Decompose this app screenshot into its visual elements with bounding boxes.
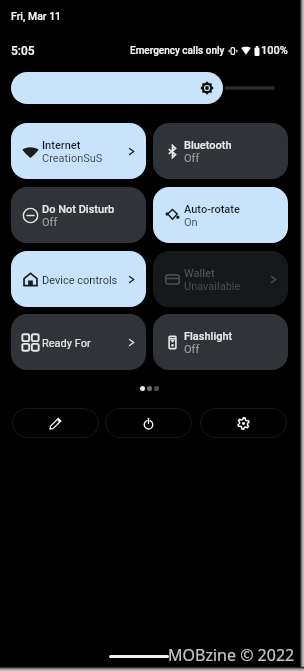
staticText: 100% (261, 44, 288, 57)
staticText: Device controls (42, 274, 118, 287)
button[interactable]: Internet (11, 123, 146, 179)
button[interactable]: Bluetooth (153, 123, 288, 179)
staticText: Off (184, 343, 200, 356)
button[interactable]: Settings (200, 408, 287, 438)
button[interactable]: Power (105, 408, 192, 438)
button[interactable]: Device controls (11, 251, 146, 307)
staticText: Wallet (184, 267, 215, 280)
staticText: Internet (42, 139, 81, 152)
staticText: CreationSuS (42, 152, 103, 165)
staticText: Off (42, 216, 58, 229)
button[interactable]: Flashlight (153, 314, 288, 370)
staticText: 5:05 (11, 44, 35, 58)
staticText: Fri, Mar 11 (11, 10, 62, 22)
staticText: Ready For (42, 337, 91, 350)
button[interactable]: Brightness (11, 72, 288, 104)
button[interactable]: Do Not Disturb (11, 187, 146, 243)
button[interactable]: Ready For (11, 314, 146, 370)
staticText: Emergency calls only (130, 45, 225, 57)
staticText: On (184, 216, 198, 229)
staticText: Bluetooth (184, 139, 232, 152)
button[interactable]: Auto-rotate (153, 187, 288, 243)
staticText: Unavailable (184, 280, 241, 293)
staticText: MOBzine © 2022 (168, 644, 295, 666)
staticText: Do Not Disturb (42, 203, 115, 216)
button[interactable]: Edit (12, 408, 99, 438)
staticText: Flashlight (184, 330, 233, 343)
staticText: Off (184, 152, 200, 165)
button[interactable]: Wallet (153, 251, 288, 307)
staticText: Auto-rotate (184, 203, 240, 216)
